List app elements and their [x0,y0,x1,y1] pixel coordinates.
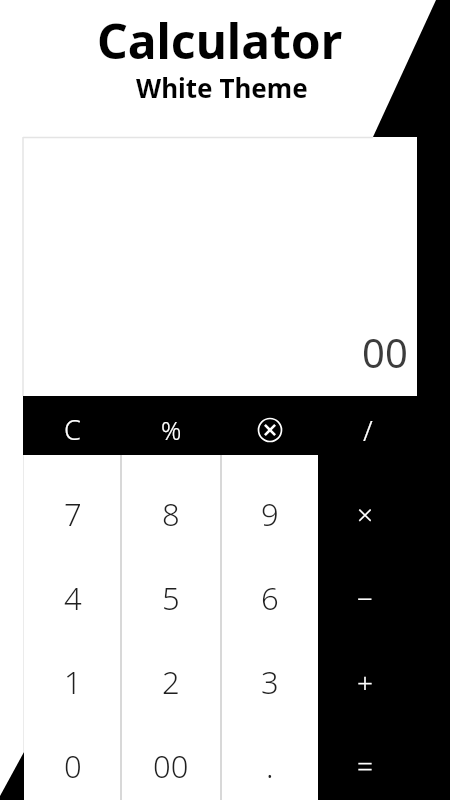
staticText: 00 [362,325,408,379]
button[interactable]: C [23,400,121,459]
staticText: % [161,413,182,447]
button[interactable]: 7 [24,472,121,556]
staticText: 2 [162,661,180,703]
staticText: 3 [261,661,279,703]
button[interactable]: 1 [24,640,121,724]
staticText: . [266,745,274,787]
staticText: Calculator [97,8,343,73]
button[interactable]: 9 [221,472,318,556]
button[interactable]: × [315,472,414,556]
staticText: 9 [261,493,279,535]
button[interactable]: − [315,556,414,640]
button[interactable]: 5 [121,556,221,640]
button[interactable]: . [221,724,318,800]
button[interactable]: / [318,400,417,459]
staticText: = [357,747,373,785]
button[interactable]: % [121,400,221,459]
staticText: White Theme [136,70,308,105]
staticText: 1 [64,661,82,703]
button[interactable]: 8 [121,472,221,556]
staticText: 00 [153,745,189,787]
button[interactable]: + [315,640,414,724]
button[interactable] [221,400,318,459]
staticText: × [357,495,373,533]
button[interactable]: 3 [221,640,318,724]
button[interactable]: 6 [221,556,318,640]
button[interactable]: 00 [121,724,221,800]
staticText: 5 [162,577,180,619]
staticText: 6 [261,577,279,619]
staticText: + [357,663,373,701]
staticText: 0 [64,745,82,787]
button[interactable]: 0 [24,724,121,800]
staticText: / [363,411,373,449]
staticText: 4 [64,577,82,619]
button[interactable]: = [315,724,414,800]
button[interactable]: 4 [24,556,121,640]
staticText: 7 [64,493,82,535]
staticText: 8 [162,493,180,535]
staticText: C [64,411,81,448]
staticText: − [357,579,373,617]
button[interactable]: 2 [121,640,221,724]
